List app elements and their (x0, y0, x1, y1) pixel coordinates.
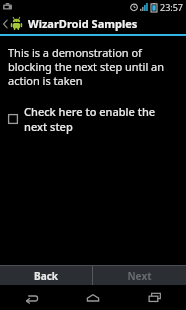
button[interactable]: Back (0, 266, 92, 285)
button[interactable]: Next (93, 266, 186, 285)
staticText: Back (34, 269, 58, 283)
button[interactable]: Recent apps (124, 285, 186, 310)
staticText: Check here to enable the next step (24, 104, 180, 134)
button[interactable]: Home (62, 285, 124, 310)
staticText: Next (127, 269, 152, 283)
button[interactable]: Back (0, 285, 62, 310)
staticText: 23:57 (160, 1, 184, 13)
button[interactable]: Check here to enable the next step (0, 102, 186, 136)
button[interactable]: Up, WizarDroid Samples (0, 13, 186, 34)
staticText: WizarDroid Samples (28, 16, 138, 31)
staticText: This is a demonstration of blocking the … (8, 45, 180, 88)
